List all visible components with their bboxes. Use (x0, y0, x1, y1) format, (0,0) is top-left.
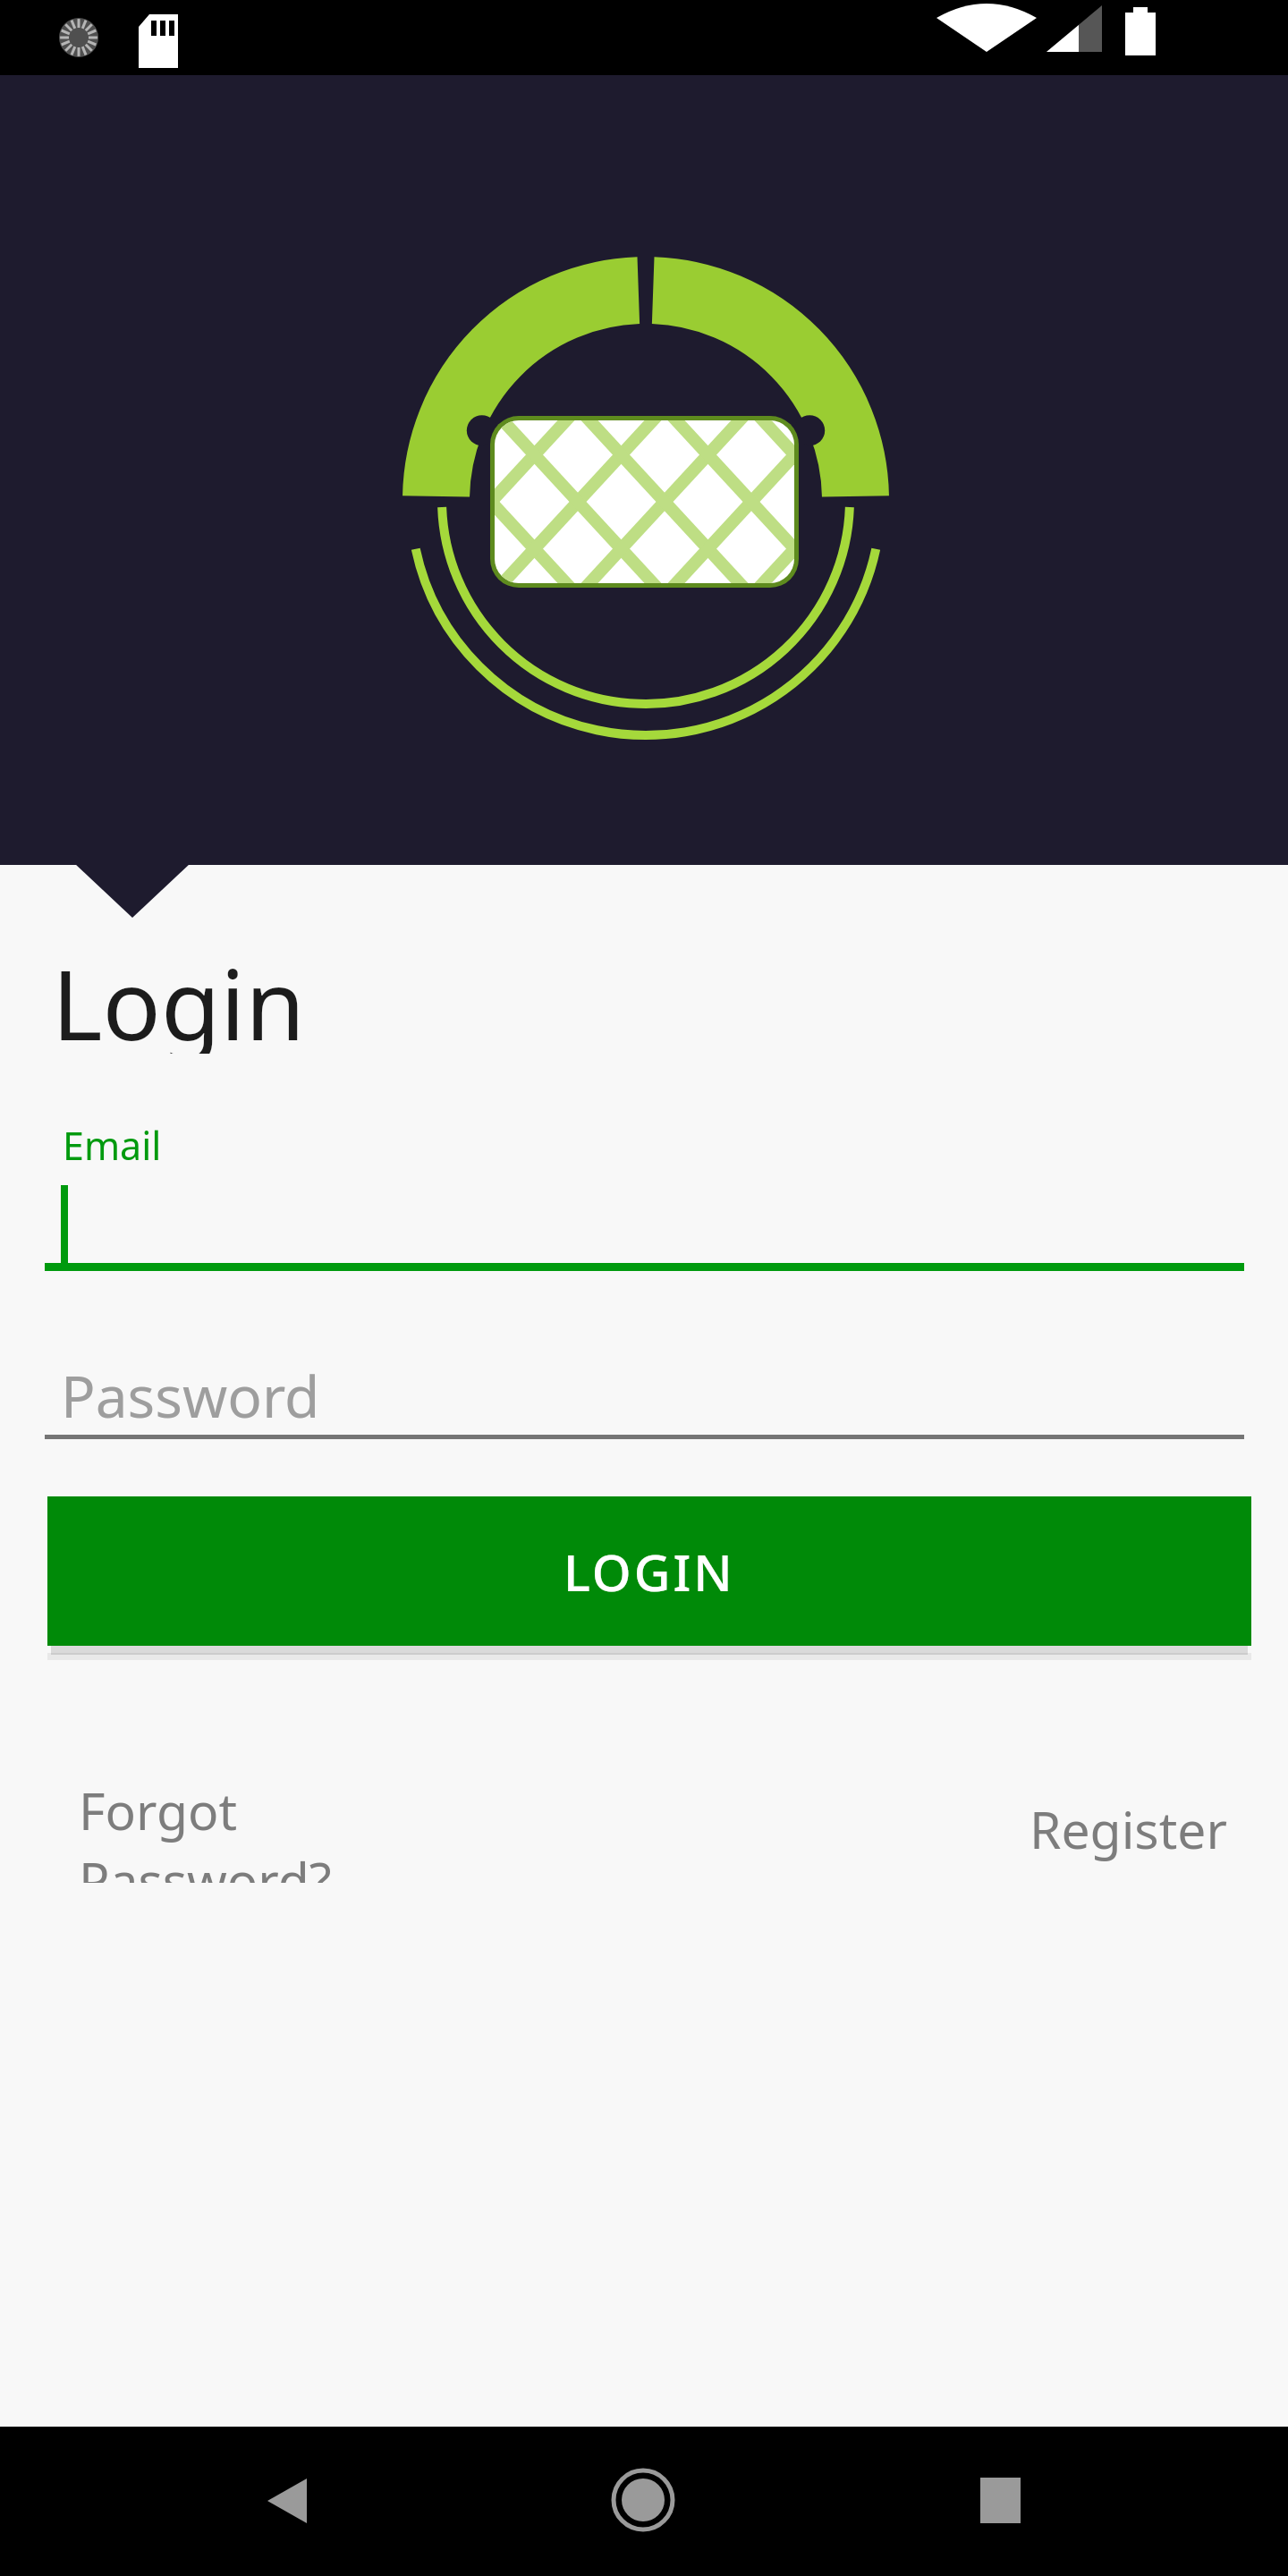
staticText: Register (1030, 1794, 1227, 1864)
button[interactable]: Recent apps (921, 2427, 1082, 2576)
button[interactable]: LOGIN (47, 1496, 1251, 1646)
staticText: Email (63, 1119, 162, 1172)
button[interactable]: Register (1002, 1775, 1252, 1883)
staticText: Forgot Password? (79, 1775, 499, 1883)
button[interactable]: Password input field (45, 1333, 1244, 1440)
staticText: Password (61, 1357, 320, 1435)
staticText: LOGIN (563, 1538, 735, 1606)
button[interactable]: Forgot Password? (54, 1775, 474, 1883)
button[interactable]: Email input field (45, 1163, 1244, 1272)
button[interactable]: Home (563, 2427, 724, 2576)
button[interactable]: Back (206, 2427, 367, 2576)
staticText: Login (52, 937, 305, 1054)
